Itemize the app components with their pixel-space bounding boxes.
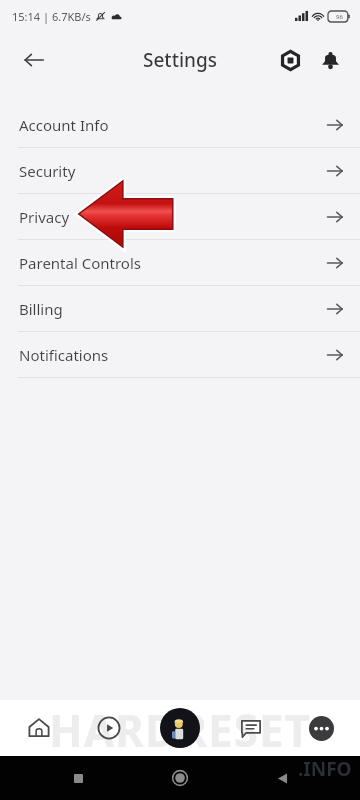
staticText: Security <box>19 161 76 181</box>
staticText: 15:14 | 6.7KB/s <box>12 9 91 24</box>
button[interactable]: Billing <box>0 286 360 331</box>
staticText: Notifications <box>19 345 109 365</box>
button[interactable]: Play <box>77 700 141 756</box>
button[interactable]: Notifications <box>0 332 360 377</box>
staticText: Billing <box>19 299 63 319</box>
button[interactable]: Chat <box>219 700 283 756</box>
staticText: Account Info <box>19 115 109 135</box>
button[interactable]: Parental Controls <box>0 240 360 285</box>
button[interactable]: Privacy <box>0 194 360 239</box>
staticText: .INFO <box>298 756 352 782</box>
button[interactable]: Back <box>14 40 54 80</box>
button[interactable]: Home <box>7 700 71 756</box>
button[interactable]: Home <box>156 756 204 800</box>
staticText: HARDRESET <box>49 700 311 756</box>
staticText: Privacy <box>19 207 70 227</box>
staticText: Parental Controls <box>19 253 141 273</box>
button[interactable]: Notifications <box>310 40 350 80</box>
button[interactable]: Account Info <box>0 102 360 147</box>
button[interactable]: Security <box>0 148 360 193</box>
button[interactable]: Robux <box>270 40 310 80</box>
staticText: Settings <box>143 47 217 73</box>
button[interactable]: More <box>289 700 353 756</box>
button[interactable]: Back <box>258 756 306 800</box>
button[interactable]: Avatar <box>148 700 212 756</box>
staticText: 96 <box>336 13 343 21</box>
button[interactable]: Recents <box>54 756 102 800</box>
